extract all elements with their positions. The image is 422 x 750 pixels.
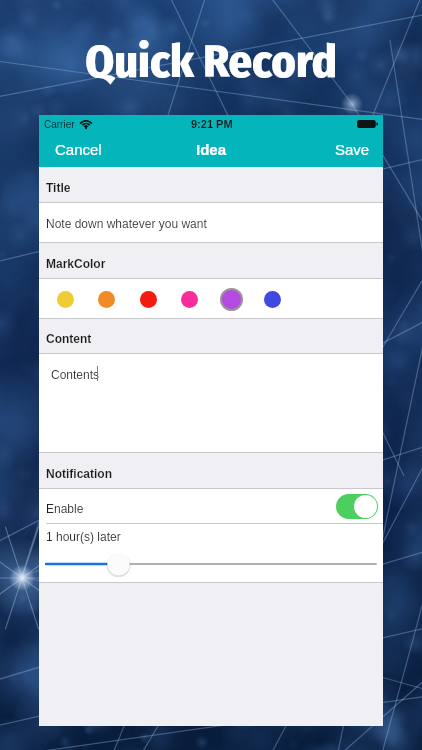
staticText: Title	[46, 181, 71, 194]
staticText: 1 hour(s) later	[46, 530, 121, 543]
button[interactable]: Mark colour 5	[264, 291, 281, 308]
button[interactable]: Mark colour 4	[220, 288, 243, 311]
button[interactable]: Save	[325, 139, 383, 166]
button[interactable]: Enable notification	[336, 494, 378, 519]
button[interactable]: Mark colour 0	[57, 291, 74, 308]
staticText: Content	[46, 332, 92, 345]
button[interactable]: Reminder delay slider	[39, 554, 383, 582]
staticText: Save	[335, 141, 370, 158]
button[interactable]: Mark colour 2	[140, 291, 157, 308]
staticText: Contents	[51, 368, 100, 381]
staticText: Cancel	[55, 141, 102, 158]
button[interactable]: Mark colour 3	[181, 291, 198, 308]
staticText: Idea	[196, 141, 227, 158]
staticText: Note down whatever you want	[46, 217, 207, 230]
button[interactable]: Cancel	[39, 139, 112, 166]
staticText: Notification	[46, 467, 112, 480]
staticText: Enable	[46, 502, 84, 515]
staticText: Quick Record	[0, 34, 422, 89]
staticText: MarkColor	[46, 257, 106, 270]
staticText: Carrier	[44, 119, 75, 130]
button[interactable]: Mark colour 1	[98, 291, 115, 308]
staticText: 9:21 PM	[191, 118, 233, 130]
